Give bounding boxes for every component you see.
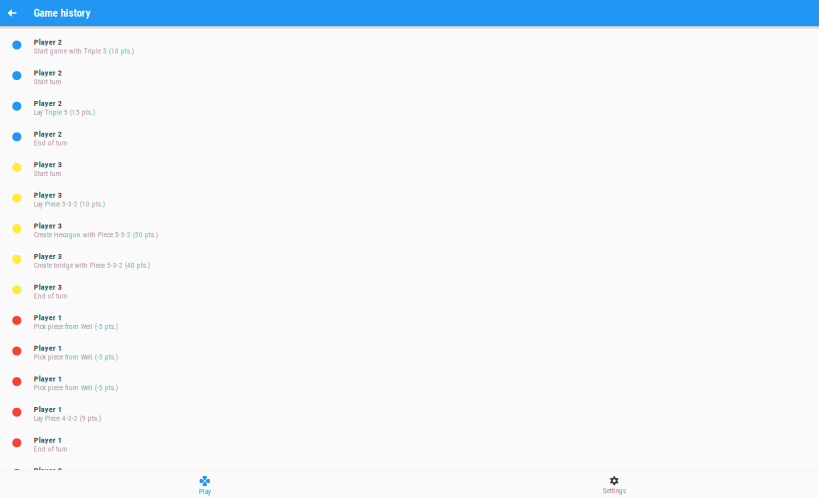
staticText: Player 2 (34, 466, 62, 475)
button[interactable]: Player 1 (0, 366, 819, 397)
staticText: Play (199, 487, 211, 496)
staticText: Player 1 (34, 343, 62, 353)
staticText: Lay Piece 5-3-2 (10 pts.) (34, 200, 105, 208)
staticText: Settings (603, 487, 626, 495)
staticText: End of turn (34, 292, 68, 300)
staticText: Create bridge with Piece 5-3-2 (40 pts.) (34, 261, 150, 270)
staticText: Player 1 (34, 313, 62, 322)
staticText: Player 3 (34, 221, 62, 230)
staticText: Player 2 (34, 99, 62, 108)
button[interactable]: Player 1 (0, 336, 819, 366)
staticText: Player 2 (34, 68, 62, 77)
staticText: Start turn (34, 169, 62, 178)
button[interactable]: Player 2 (0, 91, 819, 121)
button[interactable]: Player 3 (0, 213, 819, 244)
staticText: Lay Triple 5 (15 pts.) (34, 108, 95, 117)
staticText: Pick piece from Well (-5 pts.) (34, 322, 118, 331)
staticText: Player 1 (34, 405, 62, 414)
staticText: End of turn (34, 445, 68, 453)
button[interactable]: Player 3 (0, 274, 819, 305)
staticText: Player 3 (34, 190, 62, 200)
staticText: Player 1 (34, 435, 62, 445)
staticText: Player 3 (34, 160, 62, 169)
staticText: Create Hexagon with Piece 5-3-2 (50 pts.… (34, 230, 158, 239)
staticText: Start game with Triple 5 (10 pts.) (34, 47, 134, 55)
button[interactable]: Player 3 (0, 244, 819, 274)
staticText: Player 2 (34, 129, 62, 139)
staticText: End of turn (34, 139, 68, 147)
button[interactable]: Player 1 (0, 427, 819, 458)
button[interactable]: Player 3 (0, 183, 819, 213)
staticText: Pick piece from Well (-5 pts.) (34, 383, 118, 392)
staticText: Lay Piece 4-3-2 (9 pts.) (34, 414, 101, 423)
button[interactable]: Player 3 (0, 152, 819, 183)
button[interactable]: Player 2 (0, 121, 819, 152)
button[interactable]: Settings (409, 470, 819, 498)
button[interactable]: Back (0, 0, 24, 26)
staticText: Player 3 (34, 252, 62, 261)
button[interactable]: Player 2 (0, 30, 819, 60)
staticText: Start turn (34, 77, 62, 86)
button[interactable]: Player 2 (0, 60, 819, 91)
staticText: Player 2 (34, 37, 62, 47)
staticText: Player 3 (34, 282, 62, 292)
button[interactable]: Player 1 (0, 397, 819, 427)
staticText: Game history (34, 7, 91, 19)
button[interactable]: Player 2 (0, 489, 819, 498)
staticText: Player 1 (34, 374, 62, 383)
button[interactable]: Player 1 (0, 305, 819, 336)
button[interactable]: Play (0, 470, 409, 498)
staticText: Pick piece from Well (-5 pts.) (34, 353, 118, 361)
button[interactable]: Player 2 (0, 458, 819, 489)
